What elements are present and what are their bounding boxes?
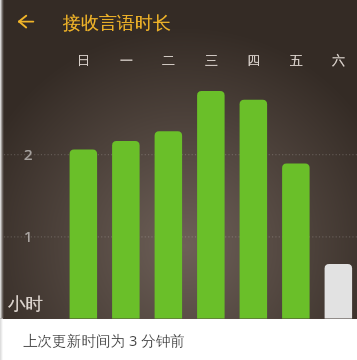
staticText: 上次更新时间为 3 分钟前 — [23, 330, 185, 350]
staticText: 二 — [162, 52, 175, 68]
staticText: 2 — [24, 144, 33, 164]
staticText: 1 — [24, 226, 33, 246]
staticText: 一 — [120, 52, 133, 68]
staticText: 五 — [290, 52, 303, 68]
staticText: 四 — [247, 52, 260, 68]
staticText: 三 — [205, 52, 218, 68]
staticText: 小时 — [8, 293, 43, 315]
staticText: 日 — [77, 52, 90, 68]
button[interactable]: Back — [4, 2, 44, 42]
staticText: 六 — [332, 52, 345, 68]
staticText: 接收言语时长 — [63, 12, 171, 35]
